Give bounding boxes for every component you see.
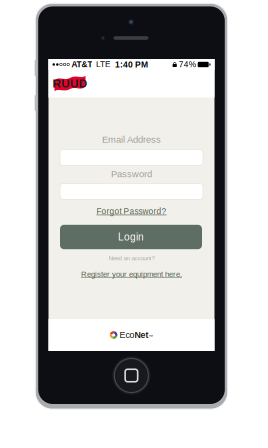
- staticText: Password: [111, 169, 152, 179]
- staticText: AT&T: [71, 60, 92, 69]
- button[interactable]: Ruud: [48, 70, 98, 97]
- staticText: RUUD: [48, 75, 92, 92]
- staticText: Forgot Password?: [96, 207, 166, 216]
- button[interactable]: Register your equipment here.: [79, 268, 183, 280]
- staticText: Login: [118, 231, 144, 243]
- staticText: Email Address: [102, 134, 161, 145]
- button[interactable]: Login: [60, 225, 202, 249]
- staticText: LTE: [96, 60, 111, 69]
- button[interactable]: Forgot Password?: [95, 205, 167, 217]
- staticText: 1:40 PM: [115, 60, 148, 69]
- staticText: Need an account?: [108, 255, 154, 261]
- staticText: EcoNet™: [119, 330, 153, 340]
- staticText: Register your equipment here.: [81, 270, 182, 278]
- staticText: 74%: [179, 60, 196, 69]
